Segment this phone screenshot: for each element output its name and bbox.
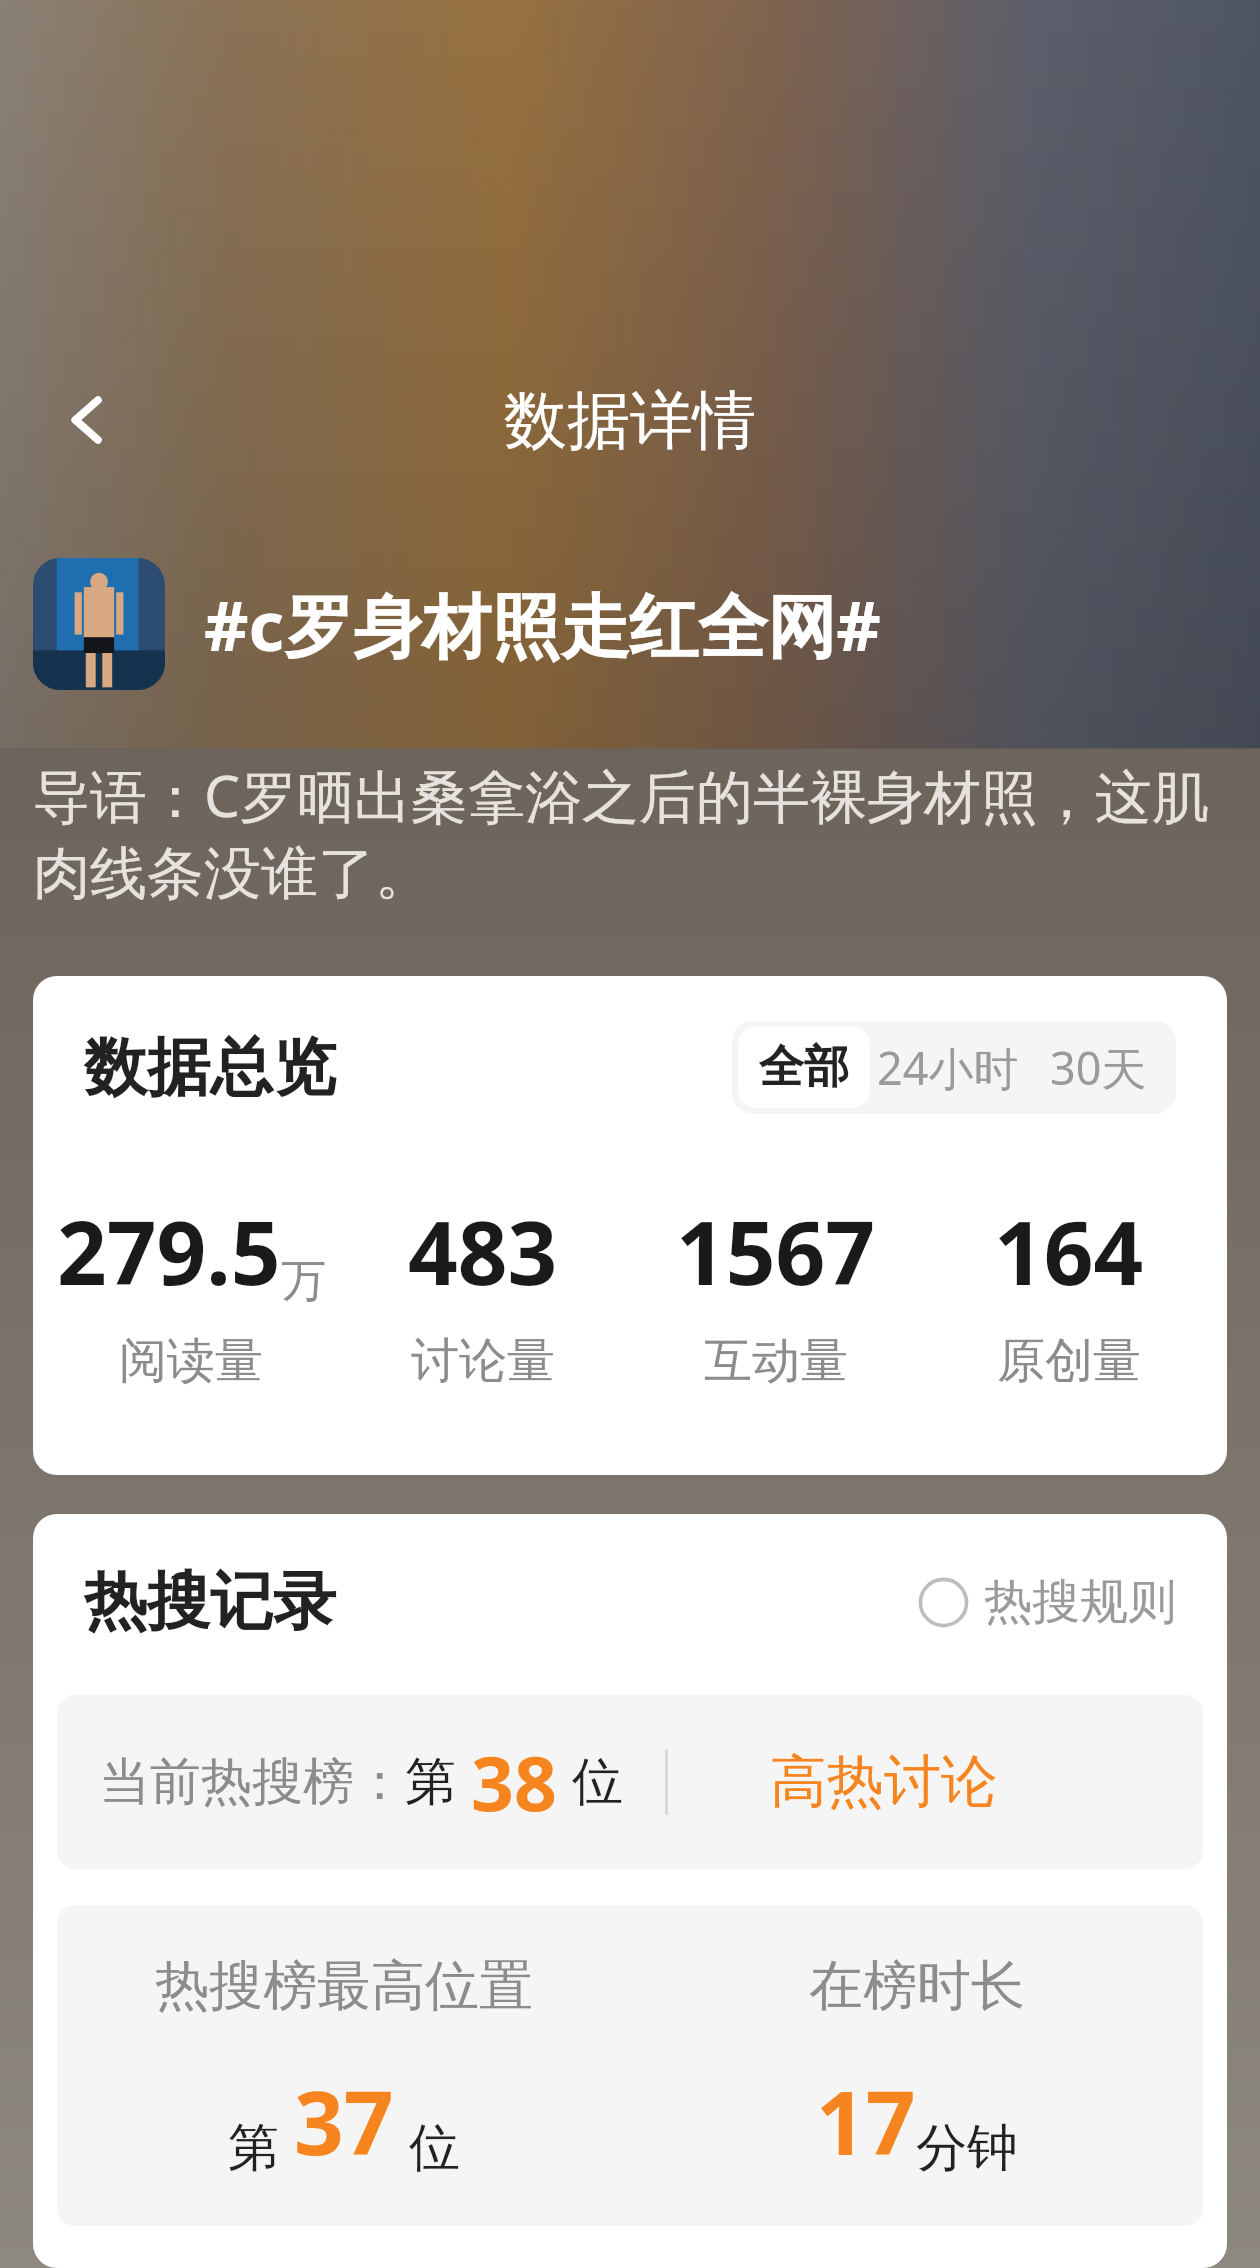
staticText: 37 xyxy=(294,2062,394,2180)
staticText: 位 xyxy=(409,2116,460,2180)
staticText: 全部 xyxy=(759,1039,849,1096)
button[interactable]: Back xyxy=(24,360,156,480)
staticText: 38 xyxy=(471,1731,557,1833)
staticText: 279.5 xyxy=(57,1192,281,1310)
staticText: 热搜榜最高位置 xyxy=(155,1952,533,2020)
staticText: 第 xyxy=(405,1750,456,1814)
staticText: 第 xyxy=(228,2116,279,2180)
button[interactable]: 483 xyxy=(337,1192,629,1391)
staticText: 164 xyxy=(994,1192,1144,1310)
button[interactable]: 164 xyxy=(922,1192,1215,1391)
staticText: 30天 xyxy=(1050,1037,1147,1098)
staticText: #c罗身材照走红全网# xyxy=(204,577,881,671)
staticText: 位 xyxy=(572,1750,623,1814)
staticText: 1567 xyxy=(676,1192,876,1310)
button[interactable]: 30天 xyxy=(1026,1027,1170,1108)
staticText: 导语：C罗晒出桑拿浴之后的半裸身材照，这肌肉线条没谁了。 xyxy=(33,756,1227,910)
button[interactable]: 当前热搜榜： xyxy=(57,1695,1203,1869)
staticText: 17 xyxy=(816,2062,916,2180)
staticText: 分钟 xyxy=(916,2116,1018,2180)
staticText: 互动量 xyxy=(704,1331,848,1391)
staticText: 数据总览 xyxy=(84,1028,336,1107)
staticText: 热搜记录 xyxy=(84,1562,336,1641)
staticText: 在榜时长 xyxy=(809,1952,1025,2020)
staticText: 483 xyxy=(408,1192,558,1310)
button[interactable]: 全部 xyxy=(738,1027,870,1108)
button[interactable]: 热搜规则 xyxy=(918,1572,1176,1632)
staticText: 热搜规则 xyxy=(984,1572,1176,1632)
staticText: 万 xyxy=(281,1253,326,1310)
staticText: 高热讨论 xyxy=(770,1746,998,1818)
button[interactable]: 279.5 xyxy=(45,1192,337,1391)
button[interactable]: Topic image xyxy=(33,558,165,690)
staticText: 数据详情 xyxy=(504,381,756,460)
button[interactable]: 24小时 xyxy=(870,1027,1026,1108)
staticText: 阅读量 xyxy=(119,1331,263,1391)
button[interactable]: 1567 xyxy=(629,1192,922,1391)
staticText: 当前热搜榜： xyxy=(99,1750,405,1814)
staticText: 讨论量 xyxy=(411,1331,555,1391)
staticText: 24小时 xyxy=(877,1037,1019,1098)
staticText: 原创量 xyxy=(997,1331,1141,1391)
